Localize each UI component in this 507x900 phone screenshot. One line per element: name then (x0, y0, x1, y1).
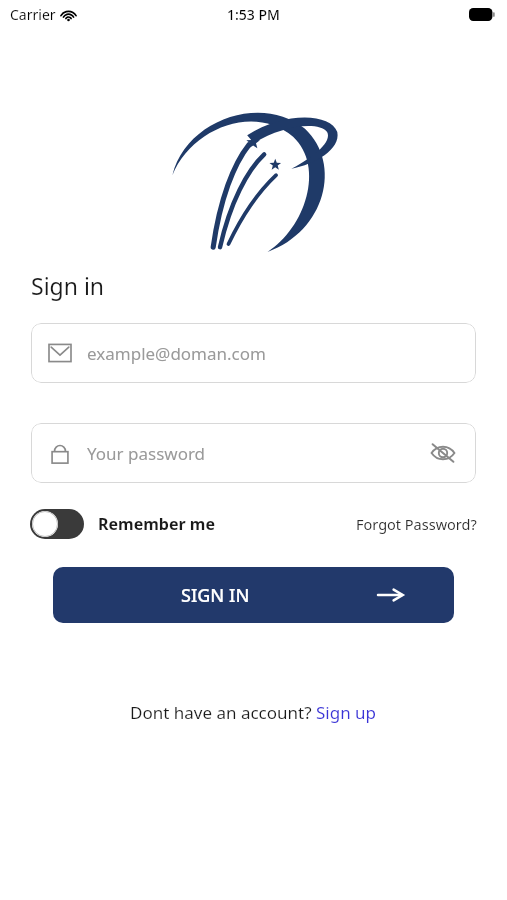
staticText: Dont have an account? (130, 701, 316, 724)
staticText: Carrier (10, 5, 56, 24)
button[interactable]: Sign up (316, 701, 377, 724)
staticText: example@doman.com (87, 342, 458, 365)
button[interactable]: Remember me (26, 509, 219, 539)
button[interactable]: SIGN IN (53, 567, 454, 623)
staticText: Sign in (31, 270, 105, 301)
staticText: SIGN IN (181, 583, 250, 608)
staticText: Forgot Password? (356, 514, 477, 534)
staticText: Your password (87, 442, 428, 465)
button[interactable]: example@doman.com (31, 323, 476, 383)
button[interactable]: Show password (428, 438, 458, 468)
staticText: 1:53 PM (227, 5, 280, 24)
button[interactable]: Your password (31, 423, 476, 483)
staticText: Sign up (316, 701, 377, 724)
staticText: Remember me (98, 513, 215, 535)
button[interactable]: Forgot Password? (352, 510, 481, 538)
